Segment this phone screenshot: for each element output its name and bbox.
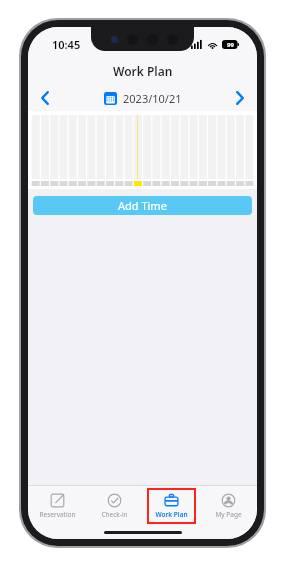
button[interactable]: Add Time [33,196,252,215]
staticText: Reservation [39,510,76,519]
button[interactable]: Previous day [28,85,62,111]
staticText: Check-in [101,510,128,519]
staticText: 99 [227,41,234,49]
staticText: Work Plan [155,510,188,519]
staticText: 2023/10/21 [123,91,182,106]
staticText: My Page [215,510,242,519]
staticText: Work Plan [113,63,173,79]
staticText: 10:45 [52,37,81,52]
button[interactable]: 2023/10/21 [104,91,182,106]
button[interactable]: Work Plan [155,493,188,519]
staticText: Add Time [118,198,167,213]
button[interactable]: Next day [223,85,257,111]
button[interactable]: Check-in [101,493,128,519]
button[interactable]: Reservation [39,493,76,519]
button[interactable]: My Page [215,493,242,519]
